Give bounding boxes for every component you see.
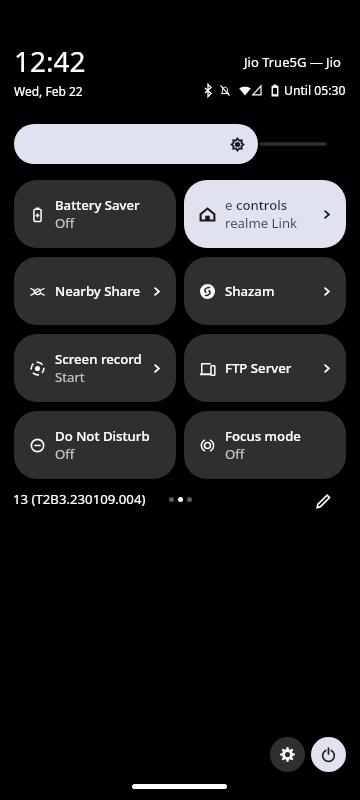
staticText: 12:42 bbox=[14, 42, 86, 80]
button[interactable]: Brightness bbox=[14, 124, 346, 164]
staticText: Start bbox=[55, 368, 85, 386]
staticText: Do Not Disturb bbox=[55, 427, 150, 445]
staticText: Nearby Share bbox=[55, 282, 141, 300]
button[interactable]: Screen record bbox=[14, 334, 176, 402]
staticText: Off bbox=[225, 445, 245, 463]
staticText: controls bbox=[236, 196, 288, 214]
staticText: FTP Server bbox=[225, 359, 292, 377]
staticText: Until 05:30 bbox=[284, 82, 346, 98]
staticText: Off bbox=[55, 445, 75, 463]
staticText: Jio True5G — Jio bbox=[244, 53, 341, 71]
button[interactable]: Shazam bbox=[184, 257, 346, 325]
button[interactable]: Focus mode bbox=[184, 411, 346, 479]
staticText: realme Link bbox=[225, 214, 298, 232]
staticText: Battery Saver bbox=[55, 196, 140, 214]
staticText: 13 (T2B3.230109.004) bbox=[13, 490, 146, 508]
staticText: Focus mode bbox=[225, 427, 301, 445]
button[interactable]: FTP Server bbox=[184, 334, 346, 402]
button[interactable]: Edit tiles bbox=[311, 489, 335, 513]
button[interactable]: Settings bbox=[270, 737, 305, 772]
staticText: e bbox=[225, 196, 233, 214]
button[interactable]: Battery Saver bbox=[14, 180, 176, 248]
button[interactable]: Power bbox=[311, 737, 346, 772]
staticText: Screen record bbox=[55, 350, 142, 368]
button[interactable]: Device controls, realme Link bbox=[184, 180, 346, 248]
staticText: Shazam bbox=[225, 282, 275, 300]
staticText: Wed, Feb 22 bbox=[14, 83, 83, 99]
staticText: Off bbox=[55, 214, 75, 232]
button[interactable]: Do Not Disturb bbox=[14, 411, 176, 479]
button[interactable]: Nearby Share bbox=[14, 257, 176, 325]
